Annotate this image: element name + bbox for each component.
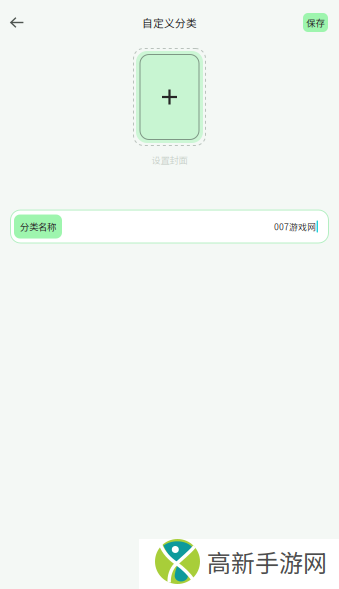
button[interactable]: Set cover xyxy=(133,48,206,146)
staticText: 设置封面 xyxy=(151,153,187,166)
staticText: 007游戏网 xyxy=(274,220,316,233)
staticText: 分类名称 xyxy=(20,220,56,233)
staticText: 自定义分类 xyxy=(142,15,197,30)
button[interactable]: 保存 xyxy=(303,13,328,32)
staticText: 保存 xyxy=(306,16,324,29)
staticText: 高新手游网 xyxy=(207,544,327,579)
button[interactable]: Back xyxy=(2,7,32,37)
button[interactable]: 分类名称 xyxy=(10,209,329,243)
